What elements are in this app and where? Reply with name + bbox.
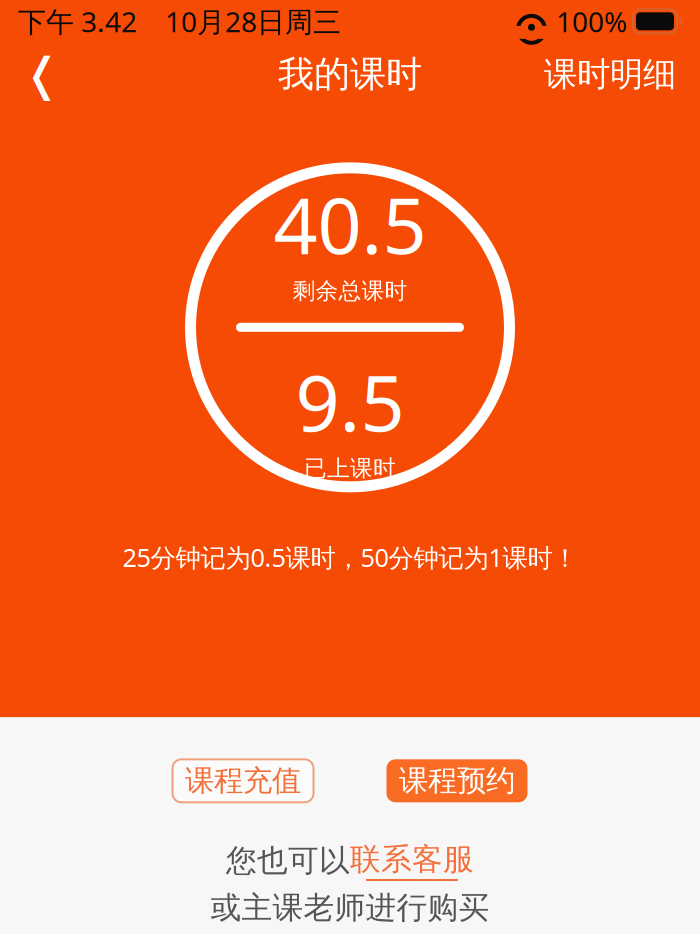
staticText: 25分钟记为0.5课时，50分钟记为1课时！ xyxy=(122,540,577,574)
staticText: 下午 3.42 xyxy=(18,3,137,40)
button[interactable]: 课程预约 xyxy=(386,759,527,802)
staticText: 联系客服 xyxy=(350,840,474,878)
staticText: 已上课时 xyxy=(304,454,396,482)
staticText: 剩余总课时 xyxy=(292,277,407,305)
staticText: 或主课老师进行购买 xyxy=(210,889,489,927)
button[interactable]: 课程充值 xyxy=(172,759,313,802)
staticText: 课程充值 xyxy=(185,763,301,799)
button[interactable]: 课时明细 xyxy=(534,46,686,103)
button[interactable]: 您也可以 xyxy=(226,840,474,881)
staticText: ❬ xyxy=(23,49,61,100)
staticText: 9.5 xyxy=(295,350,404,452)
staticText: 40.5 xyxy=(273,172,426,275)
staticText: 10月28日周三 xyxy=(165,3,341,40)
staticText: 我的课时 xyxy=(278,52,422,96)
staticText: 课程预约 xyxy=(399,763,515,799)
button[interactable]: 返回 xyxy=(14,48,70,100)
staticText: 100% xyxy=(556,3,627,40)
staticText: 您也可以 xyxy=(226,842,350,879)
staticText: 课时明细 xyxy=(544,54,676,95)
